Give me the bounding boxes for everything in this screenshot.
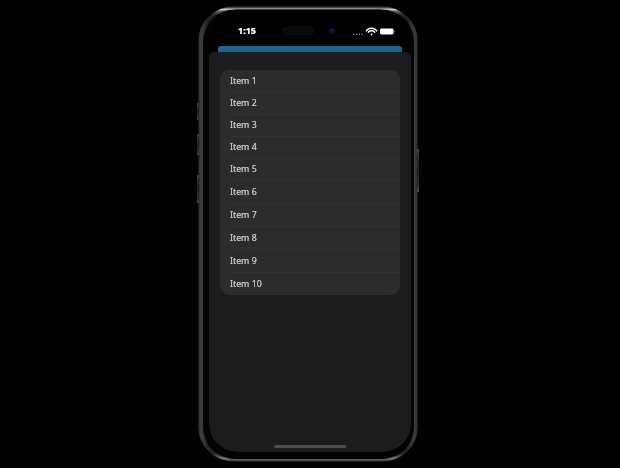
staticText: Item 3 (230, 119, 257, 131)
button[interactable]: Item 6 (220, 180, 400, 203)
staticText: Item 7 (230, 209, 257, 221)
staticText: Item 6 (230, 186, 257, 198)
staticText: Item 1 (230, 75, 257, 87)
button[interactable]: Item 4 (220, 136, 400, 158)
staticText: Item 9 (230, 255, 257, 267)
staticText: Item 2 (230, 97, 257, 109)
staticText: Item 5 (230, 163, 257, 175)
button[interactable]: Item 8 (220, 226, 400, 249)
button[interactable]: Item 1 (220, 70, 400, 92)
staticText: Item 4 (230, 141, 257, 153)
button[interactable]: Item 5 (220, 158, 400, 180)
button[interactable]: Item 9 (220, 249, 400, 272)
button[interactable]: Item 7 (220, 203, 400, 226)
staticText: Item 8 (230, 232, 257, 244)
button[interactable]: Item 10 (220, 272, 400, 295)
staticText: 1:15 (238, 24, 256, 36)
staticText: Item 10 (230, 278, 262, 290)
button[interactable]: Item 2 (220, 92, 400, 114)
button[interactable]: Item 3 (220, 114, 400, 136)
